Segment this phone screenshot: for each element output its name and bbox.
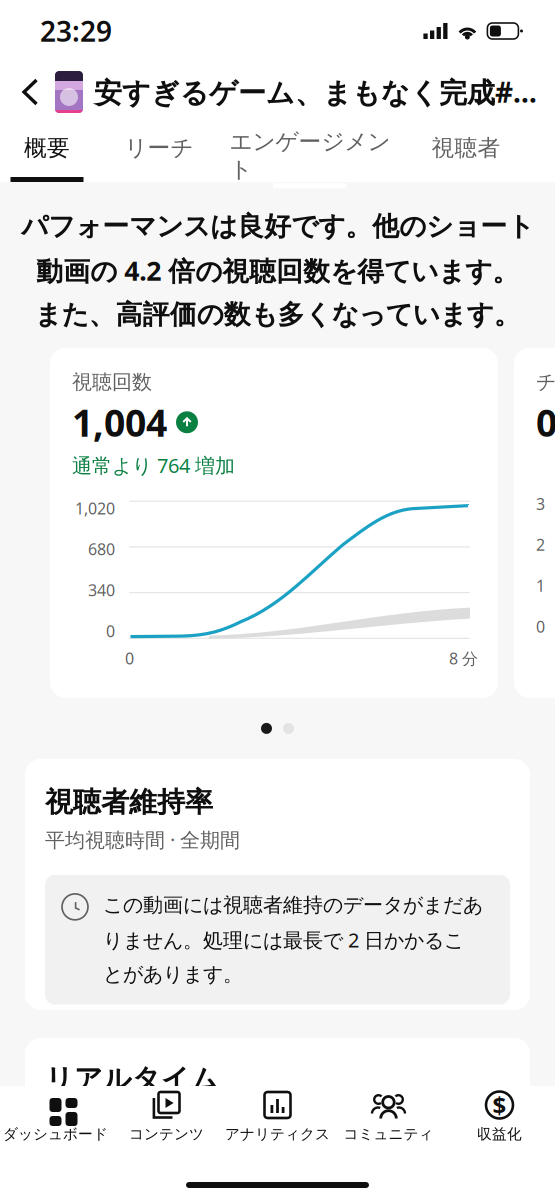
- staticText: 概要: [24, 134, 70, 162]
- staticText: $: [492, 1089, 506, 1121]
- staticText: 安すぎるゲーム、まもなく完成#…: [94, 73, 537, 111]
- button[interactable]: $: [444, 1086, 555, 1156]
- staticText: 平均視聴時間 · 全期間: [45, 826, 240, 853]
- staticText: 8 分: [449, 648, 478, 669]
- staticText: 視聴者: [431, 134, 500, 162]
- button[interactable]: コンテンツ: [111, 1086, 222, 1156]
- staticText: リアルタイム: [45, 1062, 219, 1096]
- staticText: ダッシュボード: [3, 1125, 108, 1143]
- button[interactable]: アナリティクス: [222, 1086, 333, 1156]
- staticText: 0: [536, 397, 555, 447]
- staticText: 2: [536, 534, 545, 555]
- staticText: 340: [88, 579, 115, 601]
- staticText: チャ: [536, 370, 555, 394]
- staticText: アナリティクス: [225, 1125, 330, 1143]
- staticText: 1,020: [75, 498, 115, 519]
- staticText: 通常より 764 増加: [72, 452, 235, 479]
- button[interactable]: エンゲージメント: [224, 122, 396, 182]
- staticText: パフォーマンスは良好です。他のショート 動画の 4.2 倍の視聴回数を得ています…: [21, 210, 534, 331]
- staticText: 視聴回数: [72, 370, 152, 394]
- staticText: コンテンツ: [129, 1125, 204, 1143]
- staticText: 視聴者維持率: [45, 785, 213, 819]
- staticText: 収益化: [477, 1125, 522, 1143]
- staticText: リーチ: [124, 134, 193, 162]
- staticText: 3: [536, 493, 545, 514]
- staticText: 680: [88, 538, 115, 560]
- staticText: 1: [536, 575, 545, 596]
- staticText: コミュニティ: [343, 1125, 433, 1143]
- staticText: 23:29: [40, 12, 112, 50]
- button[interactable]: リーチ: [94, 122, 224, 182]
- staticText: この動画には視聴者維持のデータがまだあ りません。処理には最長で 2 日かかるこ…: [103, 893, 483, 987]
- staticText: エンゲージメント: [229, 128, 390, 183]
- button[interactable]: Back: [6, 64, 55, 120]
- button[interactable]: コミュニティ: [333, 1086, 444, 1156]
- staticText: 0: [536, 616, 545, 637]
- staticText: 0: [106, 620, 115, 642]
- button[interactable]: ダッシュボード: [0, 1086, 111, 1156]
- button[interactable]: 視聴者: [396, 122, 536, 182]
- staticText: 1,004: [72, 397, 167, 447]
- button[interactable]: 概要: [0, 122, 94, 182]
- staticText: 0: [125, 648, 134, 669]
